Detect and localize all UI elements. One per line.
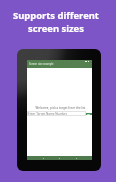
staticText: GO [87, 113, 91, 115]
button[interactable]: GO [86, 113, 92, 115]
staticText: Supports different [13, 9, 99, 22]
staticText: Enter Target Name Number [28, 112, 67, 116]
staticText: screen sizes [28, 22, 84, 35]
staticText: Screen size example [29, 62, 54, 66]
button[interactable]: Enter Target Name Number [27, 111, 86, 116]
staticText: Welcome, pick a target from the list [29, 106, 92, 110]
